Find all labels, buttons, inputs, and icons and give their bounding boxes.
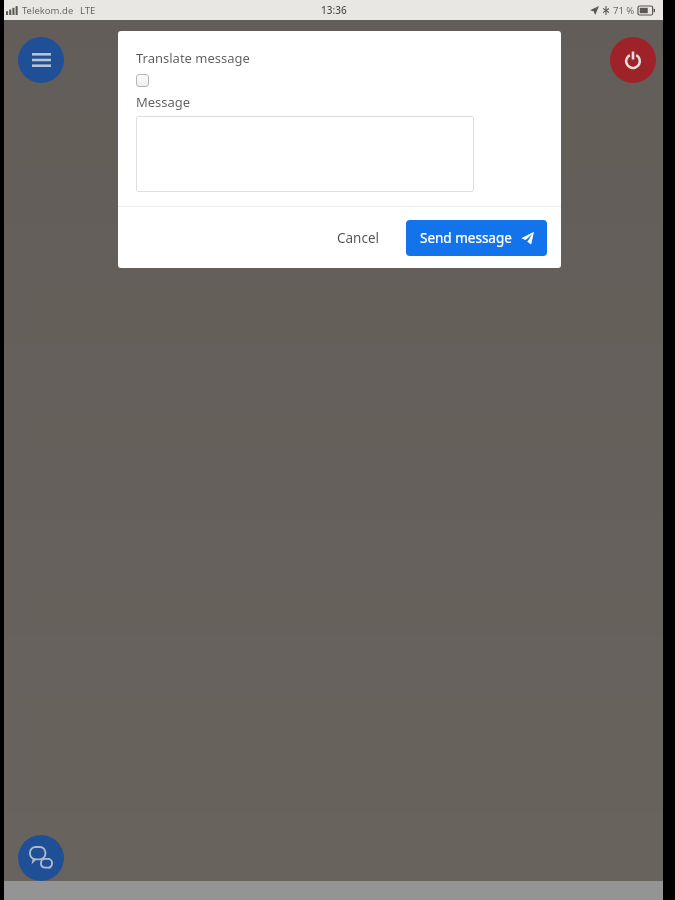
button[interactable]: Open chat xyxy=(18,835,64,881)
staticText: LTE xyxy=(80,4,96,17)
staticText: Translate message xyxy=(136,49,250,67)
button[interactable]: Log out xyxy=(610,37,656,83)
button[interactable] xyxy=(136,74,149,87)
staticText: Telekom.de xyxy=(22,4,74,17)
staticText: Send message xyxy=(420,229,512,247)
staticText: 13:36 xyxy=(321,3,347,17)
staticText: Message xyxy=(136,93,191,111)
staticText: Cancel xyxy=(337,229,380,247)
button[interactable]: Open menu xyxy=(18,37,64,83)
button[interactable]: Cancel xyxy=(323,221,394,255)
button[interactable] xyxy=(136,116,474,192)
staticText: 71 % xyxy=(613,4,635,17)
button[interactable]: Send message xyxy=(406,220,547,256)
